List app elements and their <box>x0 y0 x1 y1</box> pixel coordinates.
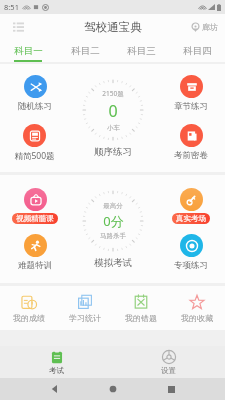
button[interactable]: 考试 <box>0 346 112 378</box>
staticText: 精简500题 <box>14 150 55 162</box>
staticText: 视频精髓课 <box>16 214 54 223</box>
button[interactable]: 考前密卷 <box>172 123 210 162</box>
staticText: 马路杀手 <box>100 232 126 240</box>
staticText: 廊坊 <box>202 22 218 32</box>
button[interactable]: 0分 <box>82 190 144 252</box>
staticText: 我的收藏 <box>181 313 213 323</box>
button[interactable]: 我的成绩 <box>0 286 57 330</box>
staticText: 0分 <box>103 212 124 230</box>
button[interactable]: 廊坊 <box>191 22 218 32</box>
staticText: 顺序练习 <box>94 146 132 158</box>
staticText: 真实考场 <box>176 214 206 223</box>
button[interactable]: Menu <box>8 17 28 37</box>
staticText: 科目一 <box>14 45 43 57</box>
button[interactable]: 专项练习 <box>172 233 210 272</box>
staticText: 章节练习 <box>174 101 208 112</box>
button[interactable]: 章节练习 <box>172 74 210 113</box>
button[interactable]: 我的收藏 <box>169 286 225 330</box>
staticText: 2150题 <box>102 89 124 98</box>
button[interactable]: 精简500题 <box>12 123 57 163</box>
button[interactable]: 难题特训 <box>16 233 54 272</box>
staticText: 学习统计 <box>69 313 101 323</box>
staticText: 8:51 <box>4 2 19 12</box>
staticText: 设置 <box>161 366 176 375</box>
button[interactable]: 学习统计 <box>57 286 113 330</box>
button[interactable]: 设置 <box>112 346 225 378</box>
button[interactable]: 随机练习 <box>16 74 54 113</box>
staticText: 最高分 <box>103 202 123 210</box>
button[interactable]: 我的错题 <box>113 286 169 330</box>
button[interactable]: 科目二 <box>57 40 113 62</box>
staticText: 0 <box>108 100 118 122</box>
staticText: 我的错题 <box>125 313 157 323</box>
staticText: 科目四 <box>183 45 212 57</box>
button[interactable]: 科目四 <box>169 40 225 62</box>
staticText: 我的成绩 <box>13 313 45 323</box>
staticText: 科目三 <box>127 45 156 57</box>
staticText: 驾校通宝典 <box>84 20 142 34</box>
staticText: 模拟考试 <box>94 257 132 269</box>
staticText: 随机练习 <box>18 101 52 112</box>
button[interactable]: 科目三 <box>113 40 169 62</box>
button[interactable]: 科目一 <box>0 40 57 62</box>
staticText: 科目二 <box>71 45 100 57</box>
staticText: 考试 <box>49 366 64 375</box>
staticText: 考前密卷 <box>174 150 208 161</box>
staticText: 专项练习 <box>174 260 208 271</box>
button[interactable]: 0 <box>82 79 144 141</box>
staticText: 小车 <box>107 124 120 132</box>
staticText: 难题特训 <box>18 260 52 271</box>
button[interactable]: 真实考场 <box>170 187 212 225</box>
button[interactable]: 视频精髓课 <box>10 187 60 225</box>
